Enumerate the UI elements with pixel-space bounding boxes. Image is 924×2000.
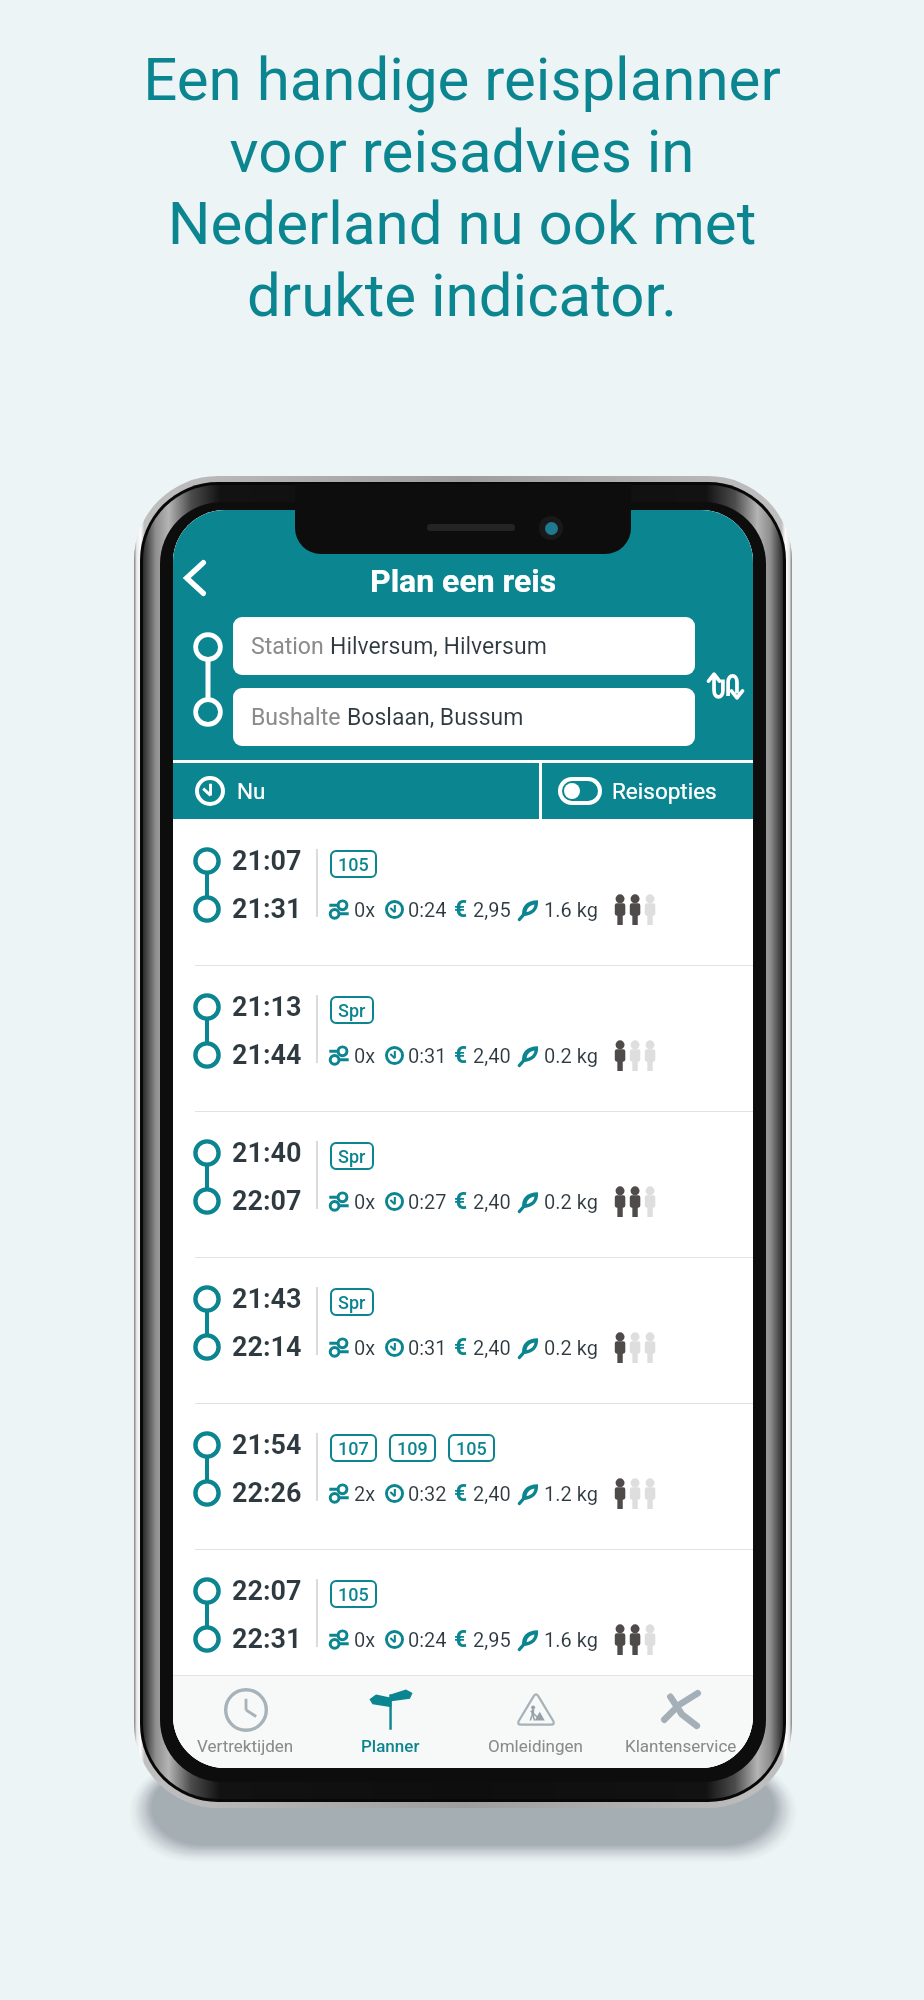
staticText: € — [454, 896, 468, 923]
staticText: 2,40 — [473, 1044, 511, 1067]
staticText: 0x — [354, 1336, 376, 1359]
staticText: Reisopties — [612, 778, 717, 804]
staticText: 105 — [338, 1584, 369, 1605]
staticText: Plan een reis — [370, 562, 557, 600]
staticText: Een handige reisplanner voor reisadvies … — [0, 44, 924, 331]
staticText: € — [454, 1188, 468, 1215]
button[interactable]: 21:43 — [173, 1257, 753, 1403]
staticText: 22:31 — [232, 1623, 302, 1655]
staticText: Spr — [338, 1000, 366, 1021]
staticText: 105 — [338, 854, 369, 875]
staticText: 0.2 kg — [544, 1190, 598, 1213]
staticText: 2,95 — [473, 898, 511, 921]
staticText: Boslaan, Bussum — [347, 704, 524, 731]
staticText: Planner — [361, 1736, 420, 1756]
staticText: 21:07 — [232, 845, 302, 877]
staticText: 105 — [456, 1438, 487, 1459]
button[interactable]: 22:07 — [173, 1549, 753, 1675]
staticText: 0:27 — [408, 1190, 447, 1213]
staticText: Klantenservice — [625, 1736, 737, 1756]
button[interactable]: Bushalte — [233, 688, 695, 746]
staticText: € — [454, 1334, 468, 1361]
staticText: 22:14 — [232, 1331, 302, 1363]
button[interactable]: Vertrektijden — [173, 1676, 318, 1768]
button[interactable]: 21:40 — [173, 1111, 753, 1257]
staticText: 22:26 — [232, 1477, 302, 1509]
staticText: 1.6 kg — [544, 1628, 598, 1651]
button[interactable]: Omleidingen — [463, 1676, 608, 1768]
staticText: 22:07 — [232, 1575, 302, 1607]
staticText: 1.6 kg — [544, 898, 598, 921]
staticText: 2x — [354, 1482, 376, 1505]
staticText: Omleidingen — [488, 1736, 583, 1756]
staticText: 0:31 — [408, 1044, 447, 1067]
button[interactable]: Klantenservice — [608, 1676, 753, 1768]
button[interactable]: Reisopties — [542, 763, 752, 819]
staticText: 2,40 — [473, 1190, 511, 1213]
staticText: 21:40 — [232, 1137, 302, 1169]
staticText: € — [454, 1626, 468, 1653]
staticText: 21:54 — [232, 1429, 302, 1461]
staticText: 2,95 — [473, 1628, 511, 1651]
staticText: 109 — [397, 1438, 428, 1459]
staticText: € — [454, 1480, 468, 1507]
staticText: 0x — [354, 1044, 376, 1067]
staticText: 2,40 — [473, 1336, 511, 1359]
staticText: 0.2 kg — [544, 1044, 598, 1067]
staticText: 0:24 — [408, 898, 447, 921]
button[interactable]: Wissel vertrek en bestemming — [697, 648, 753, 724]
staticText: 0x — [354, 898, 376, 921]
staticText: 0x — [354, 1628, 376, 1651]
staticText: Vertrektijden — [197, 1736, 294, 1756]
button[interactable]: 21:07 — [173, 819, 753, 965]
staticText: Bushalte — [251, 704, 347, 731]
staticText: 0:24 — [408, 1628, 447, 1651]
staticText: Nu — [237, 778, 266, 804]
staticText: 0:31 — [408, 1336, 447, 1359]
button[interactable]: Planner — [318, 1676, 463, 1768]
button[interactable]: 21:54 — [173, 1403, 753, 1549]
staticText: 22:07 — [232, 1185, 302, 1217]
staticText: 21:43 — [232, 1283, 302, 1315]
staticText: 21:31 — [232, 893, 302, 925]
staticText: 0.2 kg — [544, 1336, 598, 1359]
staticText: Spr — [338, 1292, 366, 1313]
button[interactable]: Station — [233, 617, 695, 675]
button[interactable]: Terug — [173, 556, 217, 600]
staticText: 1.2 kg — [544, 1482, 598, 1505]
staticText: Hilversum, Hilversum — [330, 633, 547, 660]
staticText: 21:44 — [232, 1039, 302, 1071]
button[interactable]: Nu — [173, 763, 540, 819]
staticText: € — [454, 1042, 468, 1069]
staticText: 2,40 — [473, 1482, 511, 1505]
staticText: 107 — [338, 1438, 369, 1459]
staticText: 0x — [354, 1190, 376, 1213]
button[interactable]: 21:13 — [173, 965, 753, 1111]
staticText: 21:13 — [232, 991, 302, 1023]
staticText: 0:32 — [408, 1482, 447, 1505]
staticText: Spr — [338, 1146, 366, 1167]
staticText: Station — [251, 633, 330, 660]
